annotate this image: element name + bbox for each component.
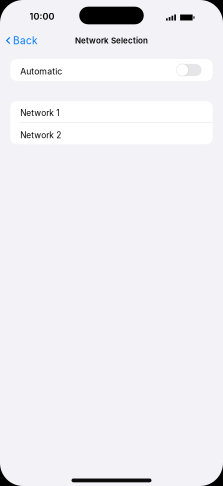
button[interactable]: Automatic [10, 59, 213, 81]
staticText: Network 2 [20, 130, 61, 140]
staticText: Automatic [20, 66, 62, 77]
staticText: Back [13, 34, 37, 47]
button[interactable]: Back [0, 30, 42, 51]
staticText: Network 1 [20, 108, 59, 118]
button[interactable]: Network 2 [10, 123, 213, 144]
staticText: Network Selection [75, 36, 148, 45]
button[interactable]: Network 1 [10, 101, 213, 122]
staticText: 10:00 [29, 11, 54, 22]
